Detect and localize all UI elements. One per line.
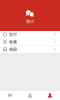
button[interactable]: 支付 — [0, 31, 60, 38]
staticText: 相册 — [9, 47, 17, 52]
button[interactable]: Me — [40, 91, 60, 100]
button[interactable]: Contacts — [20, 91, 40, 100]
button[interactable]: Chats — [0, 91, 20, 100]
button[interactable]: 相册 — [0, 46, 60, 53]
button[interactable]: 收藏 — [0, 38, 60, 45]
staticText: 微信 — [26, 19, 34, 24]
staticText: 收藏 — [9, 39, 17, 44]
staticText: 支付 — [9, 32, 17, 37]
